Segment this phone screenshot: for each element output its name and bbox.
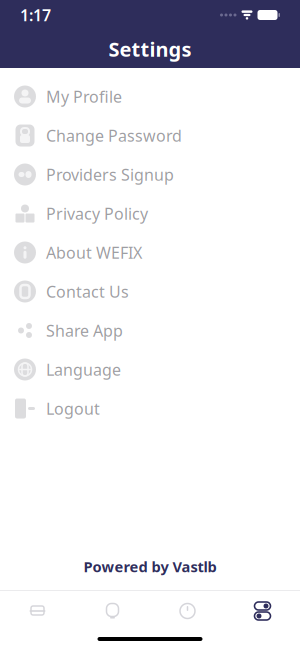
button[interactable]: History xyxy=(150,591,225,631)
staticText: Settings xyxy=(108,36,191,62)
button[interactable]: Logout xyxy=(0,389,300,428)
button[interactable]: Change Password xyxy=(0,116,300,155)
staticText: Contact Us xyxy=(46,281,129,302)
button[interactable]: Notifications xyxy=(75,591,150,631)
staticText: Logout xyxy=(46,398,100,419)
button[interactable]: Language xyxy=(0,350,300,389)
staticText: Powered by Vastlb xyxy=(83,557,216,576)
button[interactable]: About WEFIX xyxy=(0,233,300,272)
staticText: Share App xyxy=(46,320,123,341)
staticText: Privacy Policy xyxy=(46,203,148,224)
button[interactable]: Home xyxy=(0,591,75,631)
button[interactable]: Contact Us xyxy=(0,272,300,311)
staticText: 1:17 xyxy=(20,4,51,26)
staticText: Language xyxy=(46,359,121,380)
staticText: Providers Signup xyxy=(46,164,174,185)
button[interactable]: Privacy Policy xyxy=(0,194,300,233)
staticText: My Profile xyxy=(46,86,122,107)
staticText: About WEFIX xyxy=(46,242,142,263)
button[interactable]: My Profile xyxy=(0,77,300,116)
button[interactable]: Providers Signup xyxy=(0,155,300,194)
button[interactable]: Share App xyxy=(0,311,300,350)
staticText: Change Password xyxy=(46,125,182,146)
button[interactable]: Settings xyxy=(225,591,300,631)
